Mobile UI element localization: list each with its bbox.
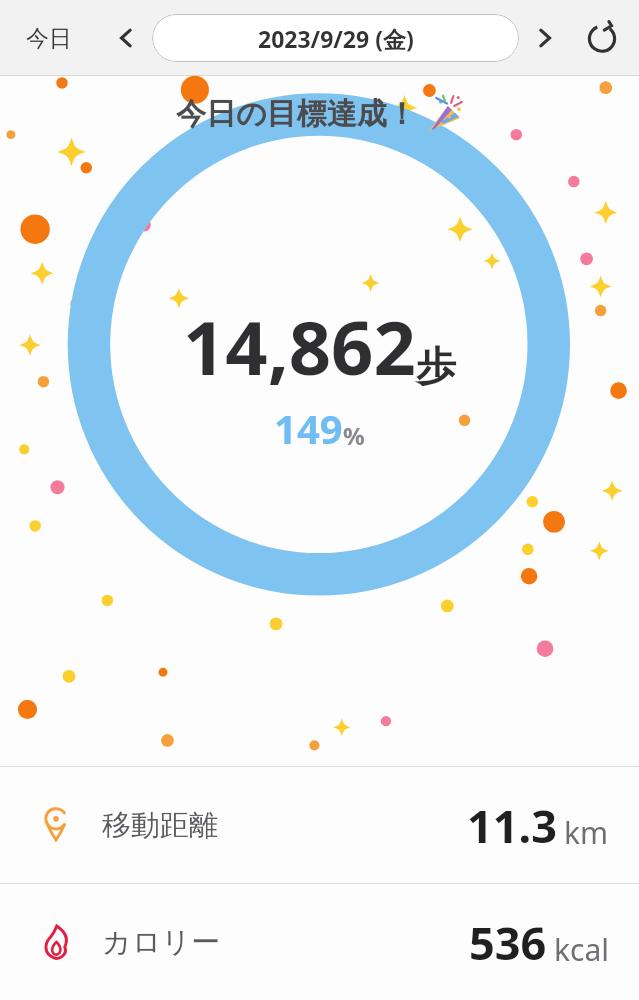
staticText: 14,862 (183, 296, 416, 397)
other: Distance (36, 805, 76, 845)
staticText: 2023/9/29 (金) (258, 23, 414, 54)
staticText: 536 (469, 912, 547, 973)
staticText: km (564, 812, 609, 853)
button[interactable]: Next day (525, 18, 565, 58)
button[interactable]: 2023/9/29 (金) (152, 14, 519, 62)
staticText: 11.3 (467, 795, 557, 856)
button[interactable]: Calories (0, 884, 639, 1000)
staticText: % (343, 419, 365, 452)
button[interactable]: 今日 (14, 16, 84, 61)
button[interactable]: Previous day (106, 18, 146, 58)
staticText: kcal (554, 929, 609, 970)
other: Calories (36, 922, 76, 962)
button[interactable]: Distance (0, 767, 639, 883)
staticText: 歩 (416, 341, 456, 391)
staticText: 149 (274, 401, 343, 455)
staticText: 今日の目標達成！ (176, 95, 417, 133)
button[interactable]: Refresh (579, 15, 625, 61)
staticText: 移動距離 (102, 807, 218, 844)
staticText: 今日 (26, 24, 72, 53)
staticText: カロリー (102, 924, 221, 961)
